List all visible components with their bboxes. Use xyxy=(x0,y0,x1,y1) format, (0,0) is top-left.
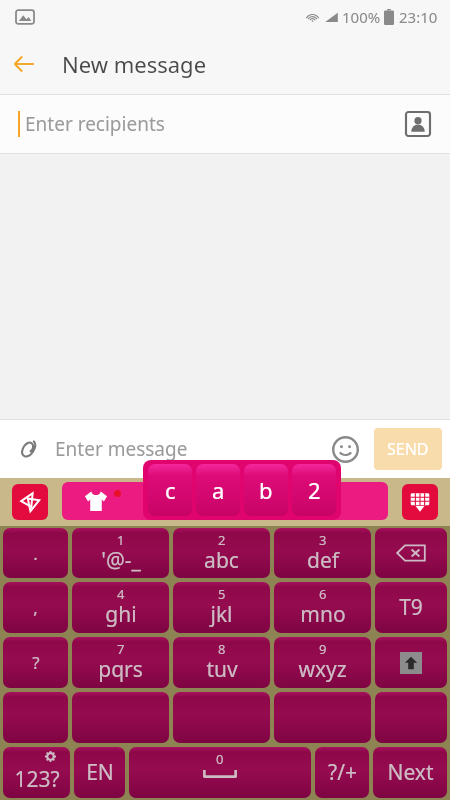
button[interactable]: 5 xyxy=(173,582,270,633)
button[interactable] xyxy=(72,692,169,743)
staticText: . xyxy=(33,542,38,565)
button[interactable]: SEND xyxy=(374,428,442,470)
staticText: 100% xyxy=(342,7,381,27)
button[interactable]: 9 xyxy=(274,637,371,688)
staticText: 8 xyxy=(218,640,226,658)
staticText: b xyxy=(259,475,273,505)
staticText: 6 xyxy=(319,585,327,603)
staticText: ?/+ xyxy=(328,758,357,787)
button[interactable] xyxy=(3,692,68,743)
button[interactable]: 8 xyxy=(173,637,270,688)
staticText: 1 xyxy=(117,531,125,549)
staticText: '@-_ xyxy=(101,546,141,575)
staticText: 0 xyxy=(216,750,224,768)
button[interactable]: Theme xyxy=(12,484,48,520)
staticText: 4 xyxy=(117,585,125,603)
button[interactable]: , xyxy=(3,582,68,633)
button[interactable]: 7 xyxy=(72,637,169,688)
button[interactable]: 4 xyxy=(72,582,169,633)
staticText: jkl xyxy=(210,600,233,629)
button[interactable] xyxy=(274,692,371,743)
staticText: abc xyxy=(204,546,239,575)
staticText: Enter recipients xyxy=(25,111,165,137)
button[interactable]: Next xyxy=(373,747,447,798)
button[interactable]: T9 xyxy=(375,582,447,633)
staticText: 9 xyxy=(319,640,327,658)
button[interactable]: 2 xyxy=(292,464,336,516)
button[interactable]: a xyxy=(196,464,240,516)
button[interactable]: 123? xyxy=(3,747,70,798)
button[interactable]: SPACE xyxy=(129,747,311,798)
staticText: ? xyxy=(32,651,40,674)
button[interactable]: Attach xyxy=(8,429,48,469)
button[interactable]: ?/+ xyxy=(315,747,369,798)
button[interactable]: EN xyxy=(74,747,125,798)
button[interactable]: Contacts xyxy=(404,110,432,138)
staticText: def xyxy=(307,546,339,575)
button[interactable]: 1 xyxy=(72,528,169,578)
staticText: mno xyxy=(300,600,346,629)
button[interactable]: Back xyxy=(0,40,48,88)
button[interactable]: c xyxy=(148,464,192,516)
button[interactable]: 2 xyxy=(173,528,270,578)
staticText: 5 xyxy=(218,585,226,603)
staticText: 23:10 xyxy=(399,7,438,27)
staticText: Enter message xyxy=(55,436,188,462)
staticText: 123? xyxy=(14,765,60,794)
staticText: 7 xyxy=(117,640,125,658)
button[interactable]: Hide keyboard xyxy=(402,484,438,520)
staticText: EN xyxy=(86,758,114,787)
staticText: 3 xyxy=(319,531,327,549)
staticText: New message xyxy=(62,49,207,79)
staticText: ghi xyxy=(105,600,137,629)
staticText: a xyxy=(212,475,225,505)
button[interactable] xyxy=(173,692,270,743)
staticText: 2 xyxy=(308,475,321,505)
staticText: 2 xyxy=(218,531,226,549)
staticText: , xyxy=(33,596,38,619)
button[interactable]: 6 xyxy=(274,582,371,633)
staticText: wxyz xyxy=(298,655,347,684)
staticText: Next xyxy=(387,758,434,787)
staticText: T9 xyxy=(399,593,423,622)
button[interactable] xyxy=(62,482,388,520)
button[interactable] xyxy=(375,692,447,743)
button[interactable]: 3 xyxy=(274,528,371,578)
staticText: c xyxy=(165,475,176,505)
button[interactable]: Enter recipients xyxy=(0,95,450,153)
staticText: pqrs xyxy=(98,655,143,684)
button[interactable]: SHIFT xyxy=(375,637,447,688)
button[interactable]: b xyxy=(244,464,288,516)
button[interactable]: ? xyxy=(3,637,68,688)
button[interactable]: BACKSPACE xyxy=(375,528,447,578)
button[interactable]: . xyxy=(3,528,68,578)
button[interactable]: Emoji xyxy=(326,430,364,468)
staticText: tuv xyxy=(206,655,238,684)
staticText: SEND xyxy=(387,438,429,460)
